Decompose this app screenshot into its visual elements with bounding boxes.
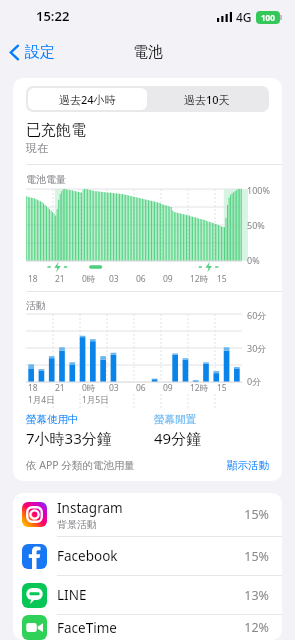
staticText: 設定 [25,43,55,62]
button[interactable]: LINE [13,576,282,614]
staticText: 21 [55,273,65,285]
staticText: 100 [261,12,275,23]
staticText: 0時 [82,273,96,285]
staticText: Facebook [57,547,118,565]
staticText: 06 [136,382,146,394]
staticText: 15 [217,273,227,285]
staticText: 15:22 [36,7,70,25]
button[interactable]: FaceTime [13,615,282,640]
staticText: 背景活動 [57,518,97,531]
staticText: 12% [244,619,269,636]
staticText: 12時 [190,273,209,285]
staticText: Instagram [57,499,123,517]
staticText: 09 [163,382,173,394]
staticText: 0時 [82,382,96,394]
staticText: 12時 [190,382,209,394]
staticText: 18 [28,382,38,394]
staticText: 依 APP 分類的電池用量 [26,458,135,472]
staticText: 螢幕閒置 [154,413,196,426]
staticText: 過去10天 [184,92,230,107]
staticText: 電池電量 [26,173,66,186]
button[interactable]: 顯示活動 [227,459,269,472]
staticText: 03 [109,273,119,285]
staticText: 15 [217,382,227,394]
button[interactable]: 過去24小時 [28,88,147,110]
staticText: 4G [236,9,252,25]
staticText: 15% [244,506,269,523]
staticText: 顯示活動 [227,459,269,472]
staticText: 現在 [26,141,48,155]
staticText: 15% [244,548,269,565]
staticText: 0分 [247,375,262,387]
button[interactable]: 過去10天 [147,88,267,110]
staticText: 1月5日 [82,394,109,406]
staticText: 已充飽電 [26,121,86,140]
staticText: 螢幕使用中 [26,413,79,426]
staticText: 06 [136,273,146,285]
staticText: 0% [247,254,260,266]
staticText: 1月4日 [28,394,55,406]
staticText: 03 [109,382,119,394]
staticText: 09 [163,273,173,285]
staticText: 60分 [247,309,267,321]
staticText: 電池 [133,43,163,62]
staticText: 21 [55,382,65,394]
staticText: 49分鐘 [154,428,202,448]
button[interactable]: Instagram [13,493,282,536]
staticText: 50% [247,219,265,231]
staticText: FaceTime [57,619,117,637]
staticText: 100% [247,184,270,196]
button[interactable]: 設定 [0,39,63,66]
staticText: LINE [57,586,87,604]
staticText: 7小時33分鐘 [26,428,112,448]
staticText: 活動 [26,299,46,312]
staticText: 18 [28,273,38,285]
button[interactable]: Facebook [13,537,282,575]
staticText: 13% [244,587,269,604]
staticText: 過去24小時 [59,92,116,107]
staticText: 30分 [247,342,267,354]
